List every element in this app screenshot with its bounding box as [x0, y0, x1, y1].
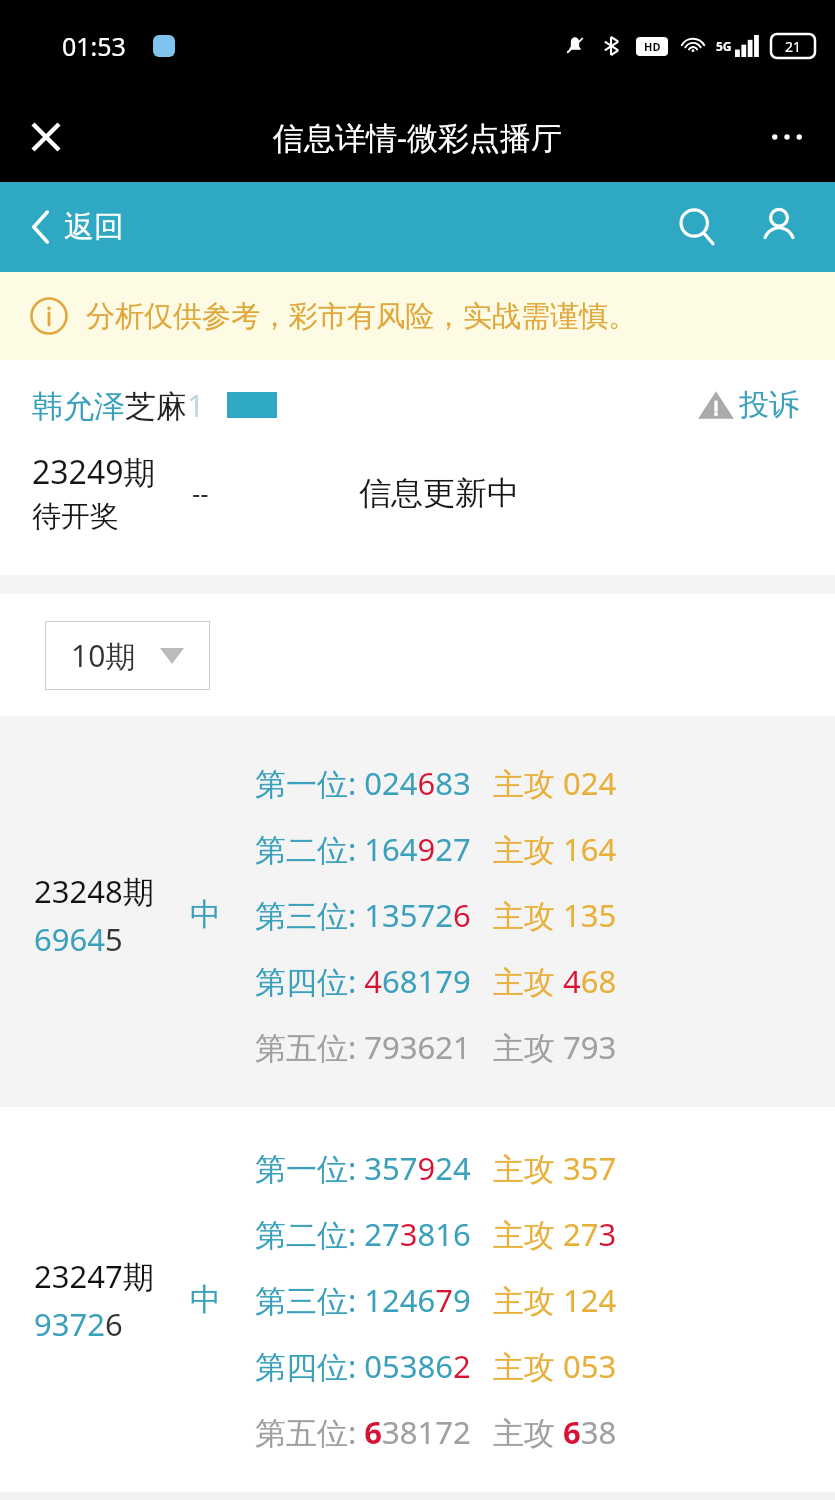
staticText: 投诉: [739, 386, 799, 424]
staticText: 第五位: 638172: [255, 1411, 471, 1453]
staticText: 韩允泽芝麻1: [32, 384, 205, 426]
staticText: 第五位: 793621: [255, 1026, 471, 1068]
staticText: --: [192, 475, 209, 510]
staticText: 中: [190, 1280, 221, 1319]
staticText: 第四位: 053862: [255, 1345, 471, 1387]
staticText: 中: [190, 895, 221, 934]
staticText: 69645: [34, 918, 123, 960]
staticText: 5G: [716, 38, 732, 54]
staticText: 10期: [71, 635, 136, 676]
staticText: 主攻 638: [493, 1411, 617, 1453]
staticText: 第四位: 468179: [255, 960, 471, 1002]
button[interactable]: Profile: [749, 197, 809, 257]
staticText: 信息详情-微彩点播厅: [273, 116, 562, 158]
staticText: 93726: [34, 1303, 123, 1345]
staticText: 第二位: 273816: [255, 1213, 471, 1255]
staticText: 主攻 273: [493, 1213, 617, 1255]
staticText: 分析仅供参考，彩市有风险，实战需谨慎。: [86, 298, 637, 335]
button[interactable]: 23247期: [0, 1107, 835, 1492]
staticText: 23248期: [34, 870, 154, 912]
staticText: 第一位: 357924: [255, 1147, 471, 1189]
staticText: 23247期: [34, 1255, 154, 1297]
staticText: 主攻 135: [493, 894, 617, 936]
staticText: 主攻 053: [493, 1345, 617, 1387]
staticText: HD: [644, 39, 661, 54]
button[interactable]: 10期: [45, 621, 210, 690]
button[interactable]: Search: [667, 197, 727, 257]
staticText: 第一位: 024683: [255, 762, 471, 804]
button[interactable]: 返回: [26, 200, 130, 254]
staticText: 21: [785, 37, 802, 56]
staticText: 第二位: 164927: [255, 828, 471, 870]
button[interactable]: Close: [20, 111, 72, 163]
staticText: 主攻 024: [493, 762, 617, 804]
staticText: 23249期: [32, 450, 156, 494]
staticText: 主攻 468: [493, 960, 617, 1002]
staticText: 01:53: [62, 29, 126, 63]
staticText: 主攻 124: [493, 1279, 617, 1321]
staticText: 待开奖: [32, 498, 119, 535]
staticText: 返回: [64, 208, 124, 246]
button[interactable]: More options: [761, 111, 813, 163]
staticText: 主攻 357: [493, 1147, 617, 1189]
button[interactable]: 23248期: [0, 722, 835, 1107]
staticText: 主攻 164: [493, 828, 617, 870]
button[interactable]: 投诉: [693, 382, 803, 428]
staticText: 第三位: 135726: [255, 894, 471, 936]
staticText: 主攻 793: [493, 1026, 617, 1068]
staticText: 信息更新中: [359, 473, 519, 513]
staticText: 第三位: 124679: [255, 1279, 471, 1321]
